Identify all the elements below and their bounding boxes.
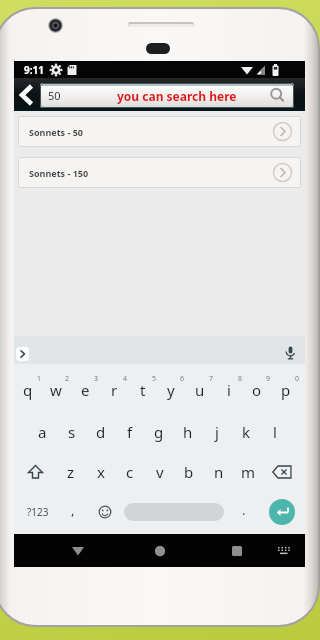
staticText: e: [81, 380, 90, 400]
staticText: v: [156, 462, 164, 482]
button[interactable]: [18, 84, 35, 106]
button[interactable]: m: [235, 458, 261, 486]
staticText: j: [215, 422, 219, 442]
button[interactable]: [272, 465, 292, 479]
button[interactable]: l: [262, 418, 288, 446]
staticText: 2: [65, 374, 70, 384]
staticText: 7: [209, 374, 214, 384]
button[interactable]: [98, 505, 112, 519]
button[interactable]: c: [117, 458, 143, 486]
button[interactable]: [277, 546, 291, 556]
button[interactable]: v: [147, 458, 173, 486]
button[interactable]: Sonnets - 50: [18, 116, 301, 147]
button[interactable]: Sonnets - 150: [18, 157, 301, 188]
staticText: y: [167, 380, 175, 400]
button[interactable]: r: [101, 376, 127, 404]
staticText: n: [214, 462, 224, 482]
staticText: 8: [238, 374, 243, 384]
button[interactable]: a: [29, 418, 55, 446]
button[interactable]: [154, 545, 166, 557]
staticText: c: [126, 462, 134, 482]
staticText: 3: [94, 374, 99, 384]
button[interactable]: s: [59, 418, 85, 446]
staticText: 6: [180, 374, 185, 384]
staticText: a: [38, 422, 47, 442]
button[interactable]: [16, 347, 29, 361]
button[interactable]: [232, 546, 242, 556]
staticText: h: [183, 422, 193, 442]
button[interactable]: o: [244, 376, 270, 404]
button[interactable]: w: [43, 376, 69, 404]
button[interactable]: [124, 503, 224, 521]
staticText: 1: [37, 374, 42, 384]
staticText: u: [195, 380, 205, 400]
staticText: ,: [71, 501, 75, 519]
staticText: ?123: [27, 505, 49, 519]
button[interactable]: 50: [40, 83, 294, 108]
button[interactable]: .: [231, 496, 257, 524]
button[interactable]: u: [187, 376, 213, 404]
button[interactable]: [269, 499, 295, 525]
staticText: q: [23, 380, 33, 400]
staticText: x: [97, 462, 105, 482]
button[interactable]: d: [88, 418, 114, 446]
staticText: b: [184, 462, 194, 482]
staticText: 0: [295, 374, 300, 384]
button[interactable]: ,: [60, 496, 86, 524]
staticText: 50: [48, 88, 61, 103]
staticText: d: [96, 422, 106, 442]
staticText: o: [252, 380, 262, 400]
staticText: Sonnets - 150: [29, 167, 89, 179]
staticText: s: [68, 422, 76, 442]
staticText: k: [242, 422, 251, 442]
button[interactable]: j: [204, 418, 230, 446]
staticText: Sonnets - 50: [29, 126, 83, 138]
button[interactable]: b: [176, 458, 202, 486]
button[interactable]: [71, 546, 85, 556]
staticText: r: [111, 380, 118, 400]
button[interactable]: p: [273, 376, 299, 404]
button[interactable]: [27, 464, 44, 480]
button[interactable]: t: [130, 376, 156, 404]
button[interactable]: h: [175, 418, 201, 446]
staticText: f: [127, 422, 133, 442]
button[interactable]: i: [216, 376, 242, 404]
staticText: g: [154, 422, 164, 442]
button[interactable]: e: [72, 376, 98, 404]
staticText: 5: [152, 374, 157, 384]
button[interactable]: k: [233, 418, 259, 446]
button[interactable]: g: [146, 418, 172, 446]
staticText: 9: [266, 374, 271, 384]
button[interactable]: z: [58, 458, 84, 486]
button[interactable]: y: [158, 376, 184, 404]
staticText: z: [67, 462, 75, 482]
staticText: i: [227, 380, 231, 400]
button[interactable]: [284, 346, 297, 362]
staticText: m: [241, 462, 256, 482]
staticText: you can search here: [117, 88, 237, 104]
button[interactable]: ?123: [25, 498, 51, 526]
button[interactable]: f: [117, 418, 143, 446]
button[interactable]: n: [206, 458, 232, 486]
staticText: .: [242, 501, 246, 519]
staticText: 4: [123, 374, 128, 384]
staticText: w: [50, 380, 62, 400]
staticText: l: [273, 422, 277, 442]
button[interactable]: q: [15, 376, 41, 404]
staticText: 9:11: [24, 63, 44, 77]
button[interactable]: x: [88, 458, 114, 486]
staticText: p: [281, 380, 291, 400]
staticText: t: [140, 380, 146, 400]
